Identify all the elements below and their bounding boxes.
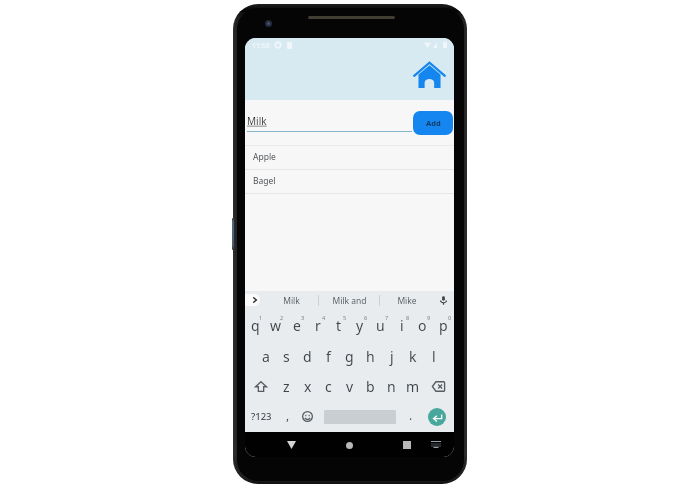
button[interactable]: u xyxy=(370,310,391,341)
button[interactable]: ?123 xyxy=(245,401,278,432)
staticText: t xyxy=(336,316,342,335)
staticText: v xyxy=(346,377,354,396)
staticText: Mike xyxy=(397,295,417,307)
staticText: 7 xyxy=(385,314,389,321)
button[interactable]: m xyxy=(402,371,423,401)
button[interactable]: f xyxy=(318,341,339,371)
staticText: r xyxy=(315,316,321,335)
button[interactable]: d xyxy=(297,341,318,371)
button[interactable]: a xyxy=(255,341,276,371)
staticText: b xyxy=(366,377,375,396)
button[interactable]: Voice input xyxy=(432,291,454,310)
staticText: i xyxy=(400,316,404,335)
staticText: Apple xyxy=(253,151,276,163)
button[interactable]: j xyxy=(381,341,402,371)
button[interactable]: Change keyboard xyxy=(425,433,447,455)
button[interactable]: e xyxy=(286,310,307,341)
button[interactable]: k xyxy=(402,341,423,371)
button[interactable]: s xyxy=(276,341,297,371)
staticText: 5 xyxy=(343,314,347,321)
button[interactable]: Bagel xyxy=(245,170,454,194)
staticText: , xyxy=(286,407,290,423)
staticText: 9 xyxy=(427,314,431,321)
button[interactable]: l xyxy=(423,341,444,371)
button[interactable]: q xyxy=(245,310,265,341)
staticText: p xyxy=(439,316,448,335)
button[interactable]: b xyxy=(360,371,381,401)
staticText: l xyxy=(432,347,436,366)
button[interactable]: Shift xyxy=(245,371,276,401)
button[interactable]: Home xyxy=(337,433,361,457)
staticText: f xyxy=(326,347,331,366)
button[interactable]: Milk and xyxy=(323,291,375,310)
button[interactable]: i xyxy=(391,310,412,341)
staticText: d xyxy=(303,347,312,366)
staticText: z xyxy=(283,377,290,396)
button[interactable]: z xyxy=(276,371,297,401)
button[interactable]: c xyxy=(318,371,339,401)
staticText: 6 xyxy=(364,314,368,321)
staticText: o xyxy=(418,316,427,335)
button[interactable]: Add xyxy=(413,111,453,135)
staticText: 3 xyxy=(301,314,305,321)
staticText: 2 xyxy=(280,314,284,321)
button[interactable]: Apple xyxy=(245,146,454,170)
staticText: Milk and xyxy=(332,295,367,307)
staticText: w xyxy=(270,316,282,335)
staticText: 4 xyxy=(322,314,326,321)
staticText: . xyxy=(409,407,413,423)
staticText: 1 xyxy=(259,314,263,321)
button[interactable]: Milk xyxy=(265,291,317,310)
staticText: 0 xyxy=(448,314,452,321)
staticText: g xyxy=(345,347,354,366)
staticText: Add xyxy=(426,118,441,128)
button[interactable]: v xyxy=(339,371,360,401)
staticText: c xyxy=(325,377,332,396)
staticText: s xyxy=(283,347,290,366)
button[interactable]: y xyxy=(349,310,370,341)
staticText: Milk xyxy=(247,114,267,128)
button[interactable]: . xyxy=(402,401,420,432)
button[interactable]: n xyxy=(381,371,402,401)
button[interactable]: Enter xyxy=(420,401,453,432)
button[interactable]: r xyxy=(307,310,328,341)
staticText: m xyxy=(406,377,420,396)
staticText: Bagel xyxy=(253,175,276,187)
staticText: e xyxy=(293,316,301,335)
staticText: Milk xyxy=(283,295,300,307)
button[interactable] xyxy=(318,401,402,432)
staticText: 11:58 xyxy=(252,41,270,50)
staticText: h xyxy=(366,347,375,366)
button[interactable]: Emoji xyxy=(297,401,318,432)
button[interactable]: x xyxy=(297,371,318,401)
staticText: k xyxy=(409,347,417,366)
button[interactable]: , xyxy=(278,401,297,432)
staticText: a xyxy=(262,347,270,366)
button[interactable]: More suggestions xyxy=(245,294,260,306)
button[interactable]: p xyxy=(433,310,454,341)
staticText: 8 xyxy=(406,314,410,321)
staticText: y xyxy=(356,316,364,335)
button[interactable]: Recent apps xyxy=(395,433,419,457)
staticText: j xyxy=(390,347,394,366)
button[interactable]: g xyxy=(339,341,360,371)
staticText: u xyxy=(376,316,385,335)
button[interactable]: w xyxy=(265,310,286,341)
button[interactable]: t xyxy=(328,310,349,341)
staticText: q xyxy=(251,316,260,335)
staticText: x xyxy=(304,377,312,396)
staticText: n xyxy=(387,377,396,396)
staticText: ?123 xyxy=(251,410,272,423)
button[interactable]: h xyxy=(360,341,381,371)
button[interactable]: o xyxy=(412,310,433,341)
button[interactable]: Mike xyxy=(381,291,433,310)
button[interactable]: Backspace xyxy=(423,371,454,401)
button[interactable]: Back xyxy=(279,433,303,457)
button[interactable]: Home xyxy=(413,61,446,88)
